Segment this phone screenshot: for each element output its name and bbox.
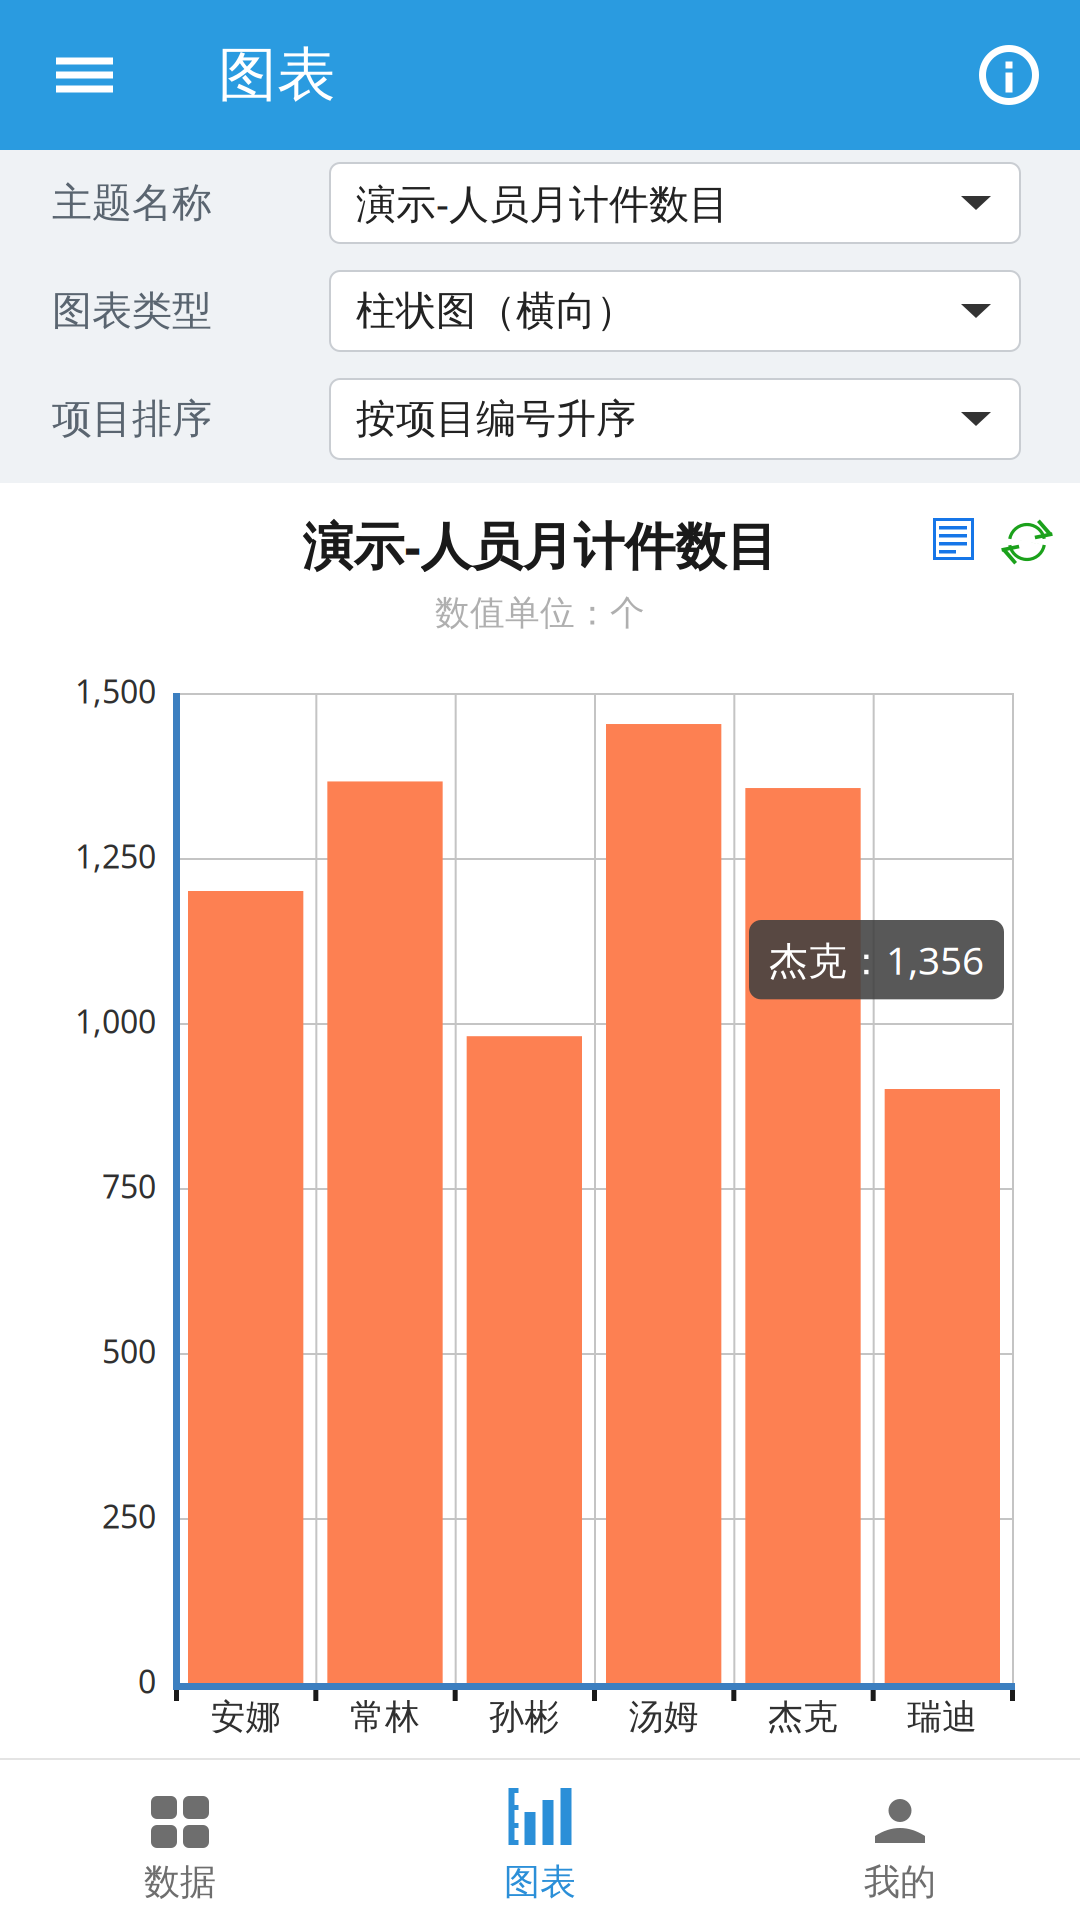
staticText: 瑞迪 (907, 1696, 977, 1738)
staticText: 1,250 (75, 835, 156, 877)
staticText: 0 (138, 1660, 156, 1702)
staticText: 孙彬 (489, 1696, 559, 1738)
staticText: 演示-人员月计件数目 (356, 176, 729, 229)
staticText: 主题名称 (52, 178, 212, 227)
staticText: 柱状图（横向） (356, 286, 636, 335)
button[interactable]: Information (954, 0, 1064, 150)
staticText: 数据 (144, 1860, 216, 1904)
staticText: 杰克：1,356 (769, 934, 984, 985)
staticText: 项目排序 (52, 394, 212, 443)
button[interactable]: 演示-人员月计件数目 (330, 163, 1020, 243)
staticText: 图表 (218, 39, 336, 111)
staticText: 按项目编号升序 (356, 394, 636, 443)
staticText: 杰克 (768, 1696, 838, 1738)
staticText: 1,500 (75, 670, 156, 712)
staticText: 安娜 (211, 1696, 281, 1738)
button[interactable]: 图表 (360, 1760, 720, 1920)
staticText: 图表 (504, 1860, 576, 1904)
staticText: 1,000 (75, 1000, 156, 1042)
staticText: 500 (102, 1330, 156, 1372)
staticText: 图表类型 (52, 286, 212, 335)
button[interactable]: Menu (0, 0, 113, 150)
button[interactable]: 柱状图（横向） (330, 271, 1020, 351)
button[interactable]: 我的 (720, 1760, 1080, 1920)
staticText: 数值单位：个 (435, 592, 645, 634)
staticText: 250 (102, 1495, 156, 1537)
button[interactable]: 数据 (0, 1760, 360, 1920)
staticText: 常林 (350, 1696, 420, 1738)
staticText: 汤姆 (629, 1696, 699, 1738)
button[interactable]: 按项目编号升序 (330, 379, 1020, 459)
staticText: 演示-人员月计件数目 (302, 511, 777, 579)
button[interactable]: Refresh (1003, 518, 1055, 566)
button[interactable]: Data table (933, 518, 974, 560)
staticText: 750 (102, 1165, 156, 1207)
staticText: 我的 (864, 1860, 936, 1904)
